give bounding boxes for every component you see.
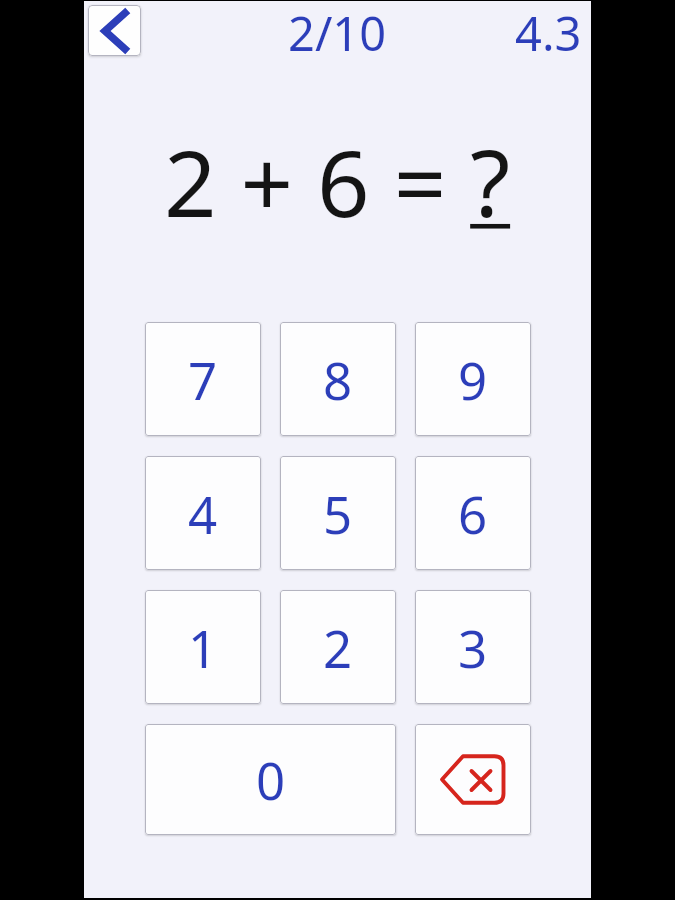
button[interactable]: 5 [280,456,396,570]
button[interactable]: 6 [415,456,531,570]
button[interactable]: 2 [280,590,396,704]
staticText: 2 + 6 = ? [164,119,511,244]
button[interactable]: 8 [280,322,396,436]
staticText: 4.3 [515,1,582,59]
button[interactable]: 9 [415,322,531,436]
staticText: 2 [323,613,353,682]
staticText: 7 [188,345,218,414]
staticText: 6 [458,479,488,548]
button[interactable] [88,5,141,56]
button[interactable]: 7 [145,322,261,436]
staticText: 1 [188,613,218,682]
staticText: 5 [323,479,353,548]
staticText: 9 [458,345,488,414]
button[interactable] [415,724,531,835]
staticText: 2/10 [288,1,387,59]
staticText: 4 [188,479,218,548]
button[interactable]: 3 [415,590,531,704]
button[interactable]: 1 [145,590,261,704]
staticText: 8 [323,345,353,414]
staticText: 3 [458,613,488,682]
staticText: 0 [256,745,286,814]
button[interactable]: 4 [145,456,261,570]
button[interactable]: 0 [145,724,396,835]
